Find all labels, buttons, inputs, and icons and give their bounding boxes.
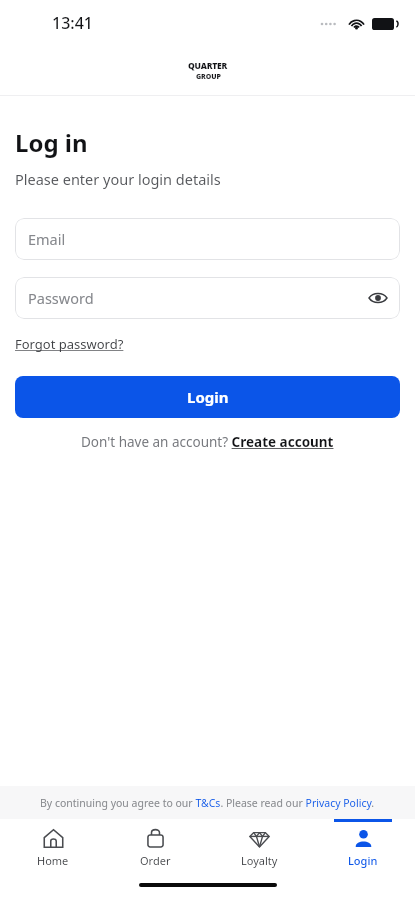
button[interactable]: Password (15, 277, 400, 319)
staticText: By continuing you agree to our T&Cs. Ple… (40, 796, 375, 810)
staticText: GROUP (196, 72, 221, 82)
button[interactable]: Loyalty (208, 819, 311, 877)
button[interactable]: Show password (364, 284, 392, 312)
staticText: Email (28, 229, 66, 249)
button[interactable]: Forgot password? (15, 335, 124, 353)
staticText: Don't have an account? Create account (81, 433, 334, 451)
staticText: Login (348, 853, 378, 868)
staticText: Password (28, 288, 94, 308)
staticText: 13:41 (52, 12, 93, 34)
button[interactable]: Email (15, 218, 400, 260)
button[interactable]: Login (15, 376, 400, 418)
button[interactable]: Order (104, 819, 207, 877)
staticText: Log in (15, 126, 88, 159)
staticText: Please enter your login details (15, 169, 221, 189)
staticText: Forgot password? (15, 335, 124, 353)
staticText: Login (187, 387, 229, 407)
button[interactable]: Home (1, 819, 104, 877)
staticText: QUARTER (188, 60, 228, 72)
button[interactable]: Login (311, 819, 414, 877)
staticText: Loyalty (241, 853, 278, 868)
button[interactable]: Don't have an account? Create account (0, 433, 415, 451)
staticText: Order (140, 853, 171, 868)
staticText: Home (37, 853, 69, 868)
